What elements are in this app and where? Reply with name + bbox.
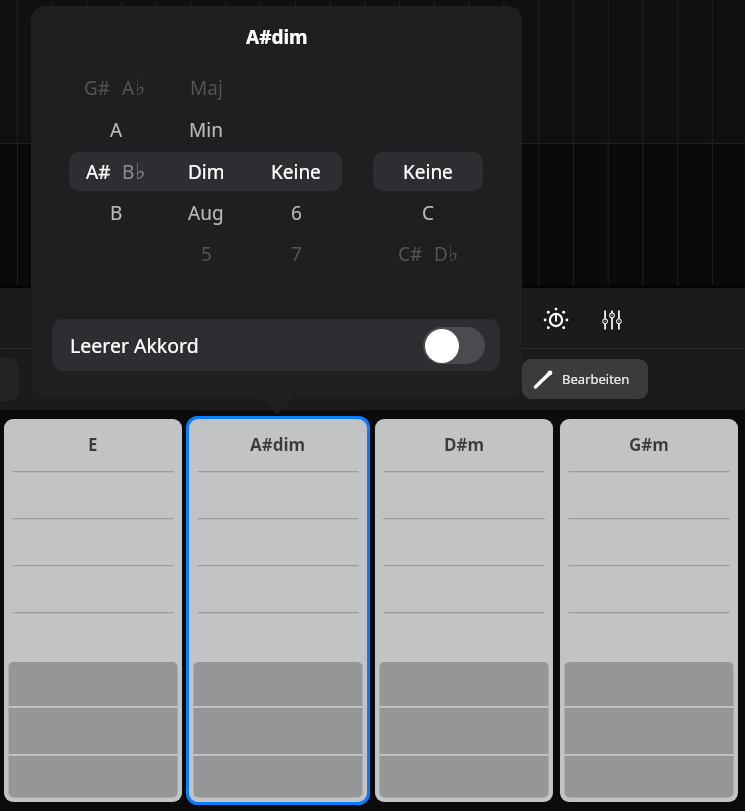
staticText: Maj (190, 75, 223, 101)
staticText: A#dim (250, 433, 306, 456)
staticText: D#m (444, 433, 485, 456)
staticText: A (122, 75, 135, 101)
staticText: G# (84, 75, 111, 101)
button[interactable]: 7 (291, 236, 302, 272)
button[interactable]: E (4, 419, 182, 802)
staticText: Keine (403, 159, 453, 185)
button[interactable]: Dim (188, 154, 225, 190)
staticText: ♭ (135, 75, 146, 101)
button[interactable]: Aug (188, 195, 224, 231)
button[interactable]: A (122, 70, 146, 106)
staticText: Bearbeiten (562, 370, 630, 388)
button[interactable]: B (122, 154, 146, 190)
staticText: 5 (201, 241, 212, 267)
button[interactable] (69, 152, 342, 191)
staticText: A# (86, 159, 111, 185)
button[interactable]: A#dim (189, 419, 367, 802)
button[interactable]: Keine (403, 154, 453, 190)
staticText: 6 (291, 200, 302, 226)
staticText: ♭ (448, 241, 459, 267)
staticText: B (110, 200, 123, 226)
button[interactable]: 6 (291, 195, 302, 231)
button[interactable]: A (110, 112, 123, 148)
staticText: D (434, 241, 448, 267)
button[interactable] (373, 152, 483, 191)
button[interactable]: Bearbeiten (522, 359, 648, 399)
staticText: E (88, 433, 98, 456)
button[interactable]: Tuner (536, 300, 576, 340)
button[interactable]: Maj (190, 70, 223, 106)
staticText: C (422, 200, 435, 226)
button[interactable]: C# (398, 236, 423, 272)
staticText: Aug (188, 200, 224, 226)
staticText: C# (398, 241, 423, 267)
button[interactable]: Keine (271, 154, 321, 190)
button[interactable]: G# (84, 70, 111, 106)
button[interactable]: Mixer (592, 300, 632, 340)
button[interactable]: 5 (201, 236, 212, 272)
staticText: Keine (271, 159, 321, 185)
staticText: G#m (629, 433, 669, 456)
button[interactable]: A# (86, 154, 111, 190)
staticText: A (110, 117, 123, 143)
staticText: Dim (188, 159, 225, 185)
button[interactable]: Min (189, 112, 223, 148)
button[interactable]: B (110, 195, 123, 231)
staticText: A#dim (246, 24, 308, 50)
staticText: Min (189, 117, 223, 143)
staticText: Leerer Akkord (70, 332, 199, 359)
button[interactable]: Leerer Akkord (52, 319, 500, 371)
button[interactable]: D (434, 236, 459, 272)
staticText: B (122, 159, 135, 185)
staticText: ♭ (135, 159, 146, 185)
button[interactable]: G#m (560, 419, 738, 802)
button[interactable]: C (422, 195, 435, 231)
staticText: 7 (291, 241, 302, 267)
button[interactable]: D#m (375, 419, 553, 802)
